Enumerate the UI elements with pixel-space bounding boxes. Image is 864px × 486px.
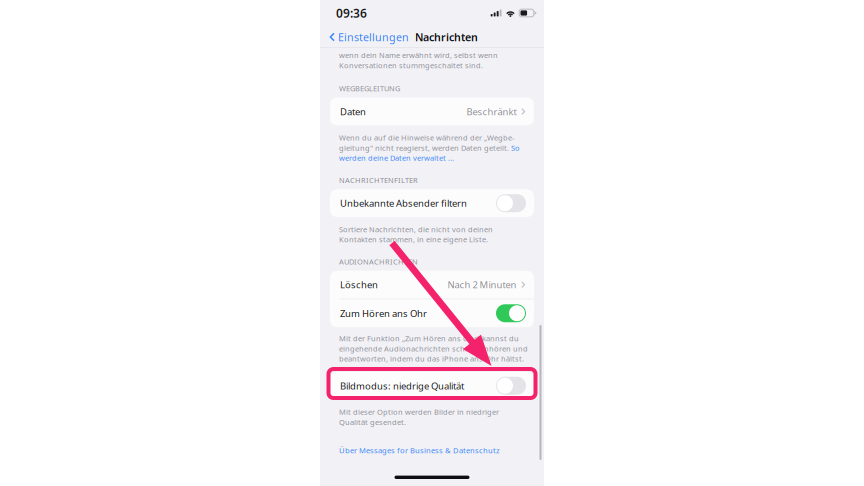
staticText: NACHRICHTENFILTER — [339, 175, 418, 185]
staticText: Konversationen stummgeschaltet sind. — [339, 60, 483, 70]
button[interactable]: Daten — [330, 97, 534, 125]
staticText: Mit der Funktion „Zum Hören ans Ohr" kan… — [339, 333, 519, 343]
staticText: gleitung" nicht reagierst, werden Daten … — [339, 143, 511, 153]
button[interactable]: Einstellungen — [329, 27, 409, 47]
staticText: Wenn du auf die Hinweise während der „We… — [339, 132, 514, 143]
staticText: Nachrichten — [415, 30, 478, 44]
staticText: beantworten, indem du das iPhone ans Ohr… — [339, 354, 524, 364]
staticText: Kontakten stammen, in eine eigene Liste. — [339, 234, 488, 245]
staticText: Bildmodus: niedrige Qualität — [340, 379, 464, 392]
staticText: Unbekannte Absender filtern — [340, 197, 467, 210]
staticText: Nach 2 Minuten — [448, 278, 517, 291]
staticText: So — [511, 143, 520, 153]
staticText: werden deine Daten verwaltet ... — [339, 153, 454, 163]
button[interactable]: Über Messages for Business & Datenschutz — [330, 442, 500, 458]
button[interactable]: Unbekannte Absender filtern — [330, 189, 534, 217]
button[interactable]: Zum Hören ans Ohr — [330, 299, 534, 327]
staticText: Einstellungen — [338, 30, 409, 44]
staticText: Sortiere Nachrichten, die nicht von dein… — [339, 224, 493, 234]
staticText: Zum Hören ans Ohr — [340, 307, 427, 320]
button[interactable]: Bildmodus: niedrige Qualität — [330, 372, 534, 400]
button[interactable]: Löschen — [330, 271, 534, 299]
staticText: wenn dein Name erwähnt wird, selbst wenn — [339, 50, 498, 60]
staticText: eingehende Audionachrichten schnell anhö… — [339, 343, 528, 354]
staticText: Löschen — [340, 278, 378, 291]
staticText: AUDIONACHRICHTEN — [339, 256, 418, 267]
staticText: 09:36 — [336, 5, 367, 21]
staticText: Qualität gesendet. — [339, 417, 406, 427]
staticText: Daten — [340, 105, 366, 118]
staticText: Über Messages for Business & Datenschutz — [339, 445, 500, 455]
staticText: WEGBEGLEITUNG — [339, 83, 400, 93]
staticText: Beschränkt — [467, 105, 517, 118]
staticText: Mit dieser Option werden Bilder in niedr… — [339, 407, 499, 417]
